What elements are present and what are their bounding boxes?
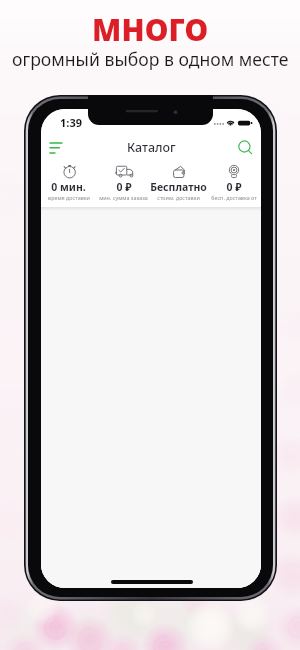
button[interactable]: Бесплатно [151,165,206,201]
button[interactable]: Filter [44,136,68,160]
button[interactable]: 0 ₽ [96,165,151,201]
button[interactable]: 0 мин. [41,165,96,201]
staticText: 1:39 [60,115,82,130]
staticText: огромный выбор в одном месте [12,47,289,71]
staticText: стоим. доставки [157,194,200,201]
staticText: бесп. доставка от [211,194,257,201]
staticText: Бесплатно [150,180,207,194]
staticText: Каталог [127,139,176,156]
staticText: мин. сумма заказа [99,194,148,201]
button[interactable]: Search [233,135,257,159]
staticText: 0 ₽ [116,180,132,194]
staticText: 0 ₽ [226,180,242,194]
staticText: МНОГО [92,9,209,50]
staticText: 0 мин. [51,180,86,194]
button[interactable]: 0 ₽ [206,165,261,201]
staticText: время доставки [48,194,90,201]
